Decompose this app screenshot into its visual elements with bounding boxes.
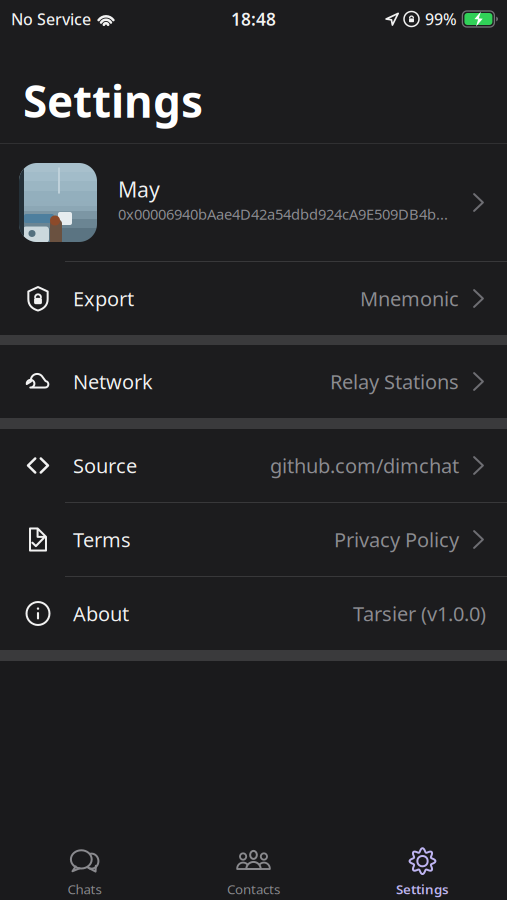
staticText: May bbox=[118, 175, 160, 203]
button[interactable]: May bbox=[0, 144, 507, 261]
staticText: 18:48 bbox=[231, 7, 276, 30]
staticText: 0x00006940bAae4D42a54dbd924cA9E509DB4b..… bbox=[118, 204, 448, 224]
staticText: Terms bbox=[73, 526, 131, 553]
staticText: Export bbox=[73, 285, 134, 312]
button[interactable]: Chats bbox=[0, 822, 169, 900]
staticText: Privacy Policy bbox=[334, 526, 459, 553]
staticText: Chats bbox=[67, 880, 101, 898]
button[interactable]: Network bbox=[0, 345, 507, 418]
staticText: Settings bbox=[396, 880, 449, 898]
button[interactable]: About bbox=[0, 577, 507, 650]
staticText: Contacts bbox=[227, 880, 280, 898]
button[interactable]: Terms bbox=[0, 503, 507, 576]
staticText: Mnemonic bbox=[360, 285, 459, 312]
staticText: Source bbox=[73, 452, 137, 479]
staticText: About bbox=[73, 600, 129, 627]
button[interactable]: Settings bbox=[338, 822, 507, 900]
staticText: github.com/dimchat bbox=[270, 452, 459, 479]
staticText: Network bbox=[73, 368, 153, 395]
staticText: Relay Stations bbox=[330, 368, 459, 395]
staticText: 99% bbox=[425, 8, 457, 30]
staticText: Tarsier (v1.0.0) bbox=[353, 600, 486, 627]
staticText: Settings bbox=[23, 72, 203, 130]
button[interactable]: Source bbox=[0, 429, 507, 502]
button[interactable]: Contacts bbox=[169, 822, 338, 900]
button[interactable]: Export bbox=[0, 262, 507, 335]
staticText: No Service bbox=[11, 8, 91, 30]
